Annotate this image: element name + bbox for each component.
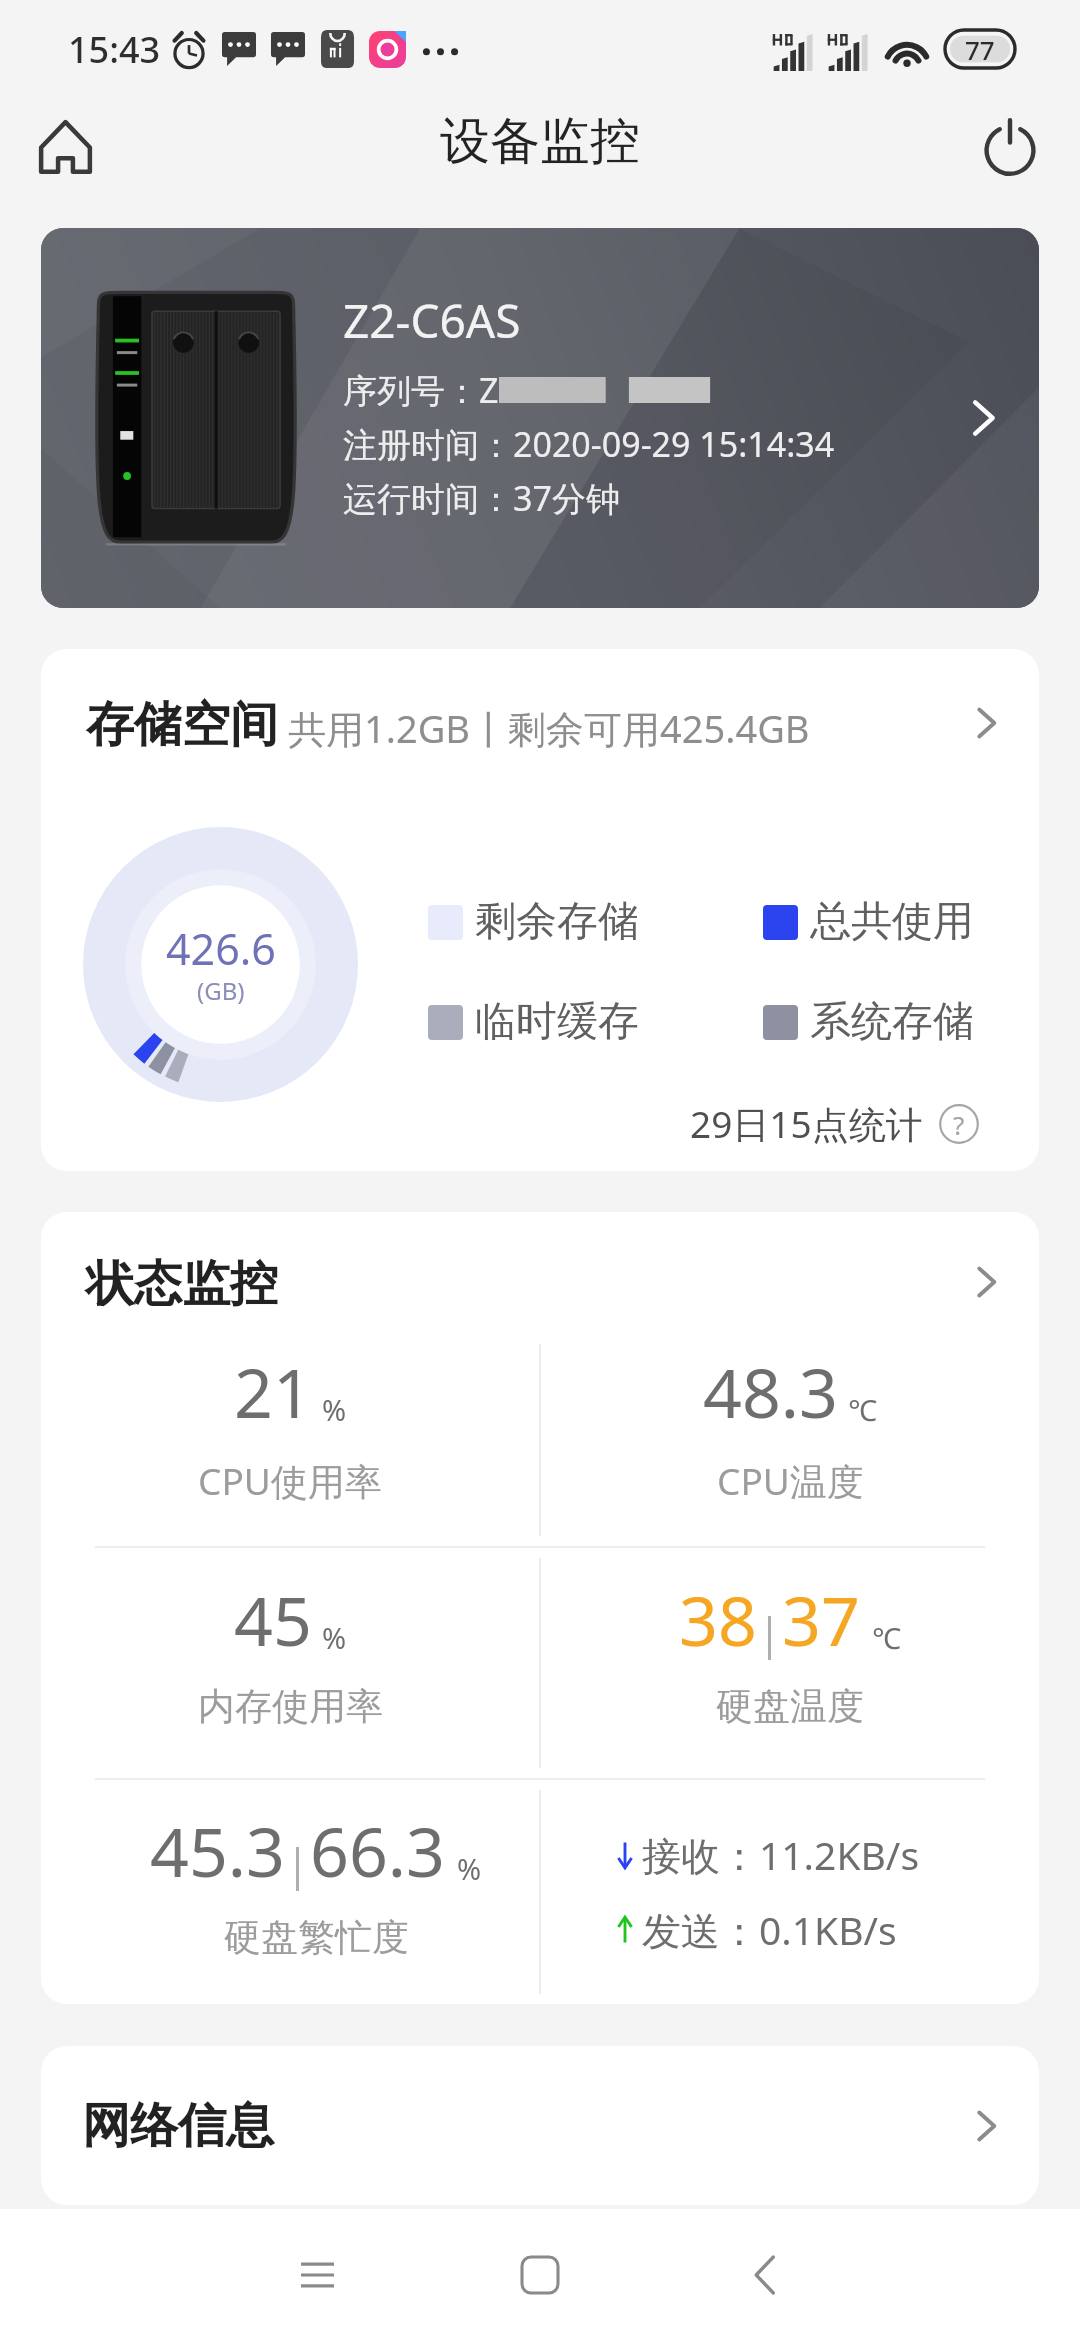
staticText: 21	[234, 1345, 312, 1438]
staticText: CPU使用率	[198, 1455, 382, 1506]
staticText: 临时缓存	[475, 996, 639, 1048]
button[interactable]: 主屏幕	[475, 2210, 605, 2340]
staticText: Z2-C6AS	[343, 289, 521, 352]
staticText: 77	[965, 32, 995, 67]
staticText: 66.3	[310, 1804, 445, 1897]
staticText: 硬盘温度	[716, 1683, 864, 1730]
staticText: 总共使用	[810, 896, 974, 948]
staticText: 运行时间：37分钟	[343, 475, 620, 521]
staticText: 29日15点统计	[690, 1098, 923, 1149]
staticText: 37	[782, 1573, 860, 1666]
staticText: 系统存储	[810, 996, 974, 1048]
staticText: 45	[234, 1573, 312, 1666]
staticText: 45.3	[150, 1804, 285, 1897]
staticText: 接收：11.2KB/s	[642, 1828, 920, 1881]
staticText: 设备监控	[440, 110, 640, 173]
staticText: ?	[953, 1107, 965, 1142]
staticText: 存储空间	[86, 695, 278, 755]
staticText: 共用1.2GB丨剩余可用425.4GB	[288, 702, 810, 754]
staticText: 状态监控	[86, 1254, 278, 1314]
staticText: 硬盘繁忙度	[224, 1914, 409, 1961]
button[interactable]: Z2-C6AS	[41, 228, 1039, 608]
button[interactable]: 返回	[700, 2210, 830, 2340]
button[interactable]: 主页	[0, 82, 135, 212]
button[interactable]: 最近任务	[252, 2210, 382, 2340]
button[interactable]: 状态监控	[41, 1212, 1039, 1334]
button[interactable]: 帮助	[939, 1104, 979, 1144]
staticText: 注册时间：2020-09-29 15:14:34	[343, 421, 835, 467]
button[interactable]: 网络信息	[41, 2046, 1039, 2205]
staticText: 内存使用率	[198, 1683, 383, 1730]
staticText: CPU温度	[717, 1455, 864, 1506]
staticText: %	[322, 1618, 347, 1657]
staticText: %	[322, 1390, 347, 1429]
staticText: ℃	[872, 1618, 901, 1657]
staticText: %	[457, 1849, 482, 1888]
button[interactable]: 存储空间	[41, 649, 1039, 789]
staticText: 48.3	[703, 1345, 838, 1438]
button[interactable]: 电源	[940, 82, 1080, 212]
staticText: 剩余存储	[475, 896, 639, 948]
staticText: 发送：0.1KB/s	[642, 1903, 897, 1956]
staticText: 序列号：Z	[343, 367, 499, 413]
staticText: ℃	[848, 1390, 877, 1429]
staticText: 426.6	[166, 919, 276, 978]
staticText: 38	[679, 1573, 757, 1666]
staticText: 网络信息	[82, 2096, 274, 2156]
staticText: 15:43	[68, 25, 161, 74]
staticText: (GB)	[197, 974, 245, 1007]
